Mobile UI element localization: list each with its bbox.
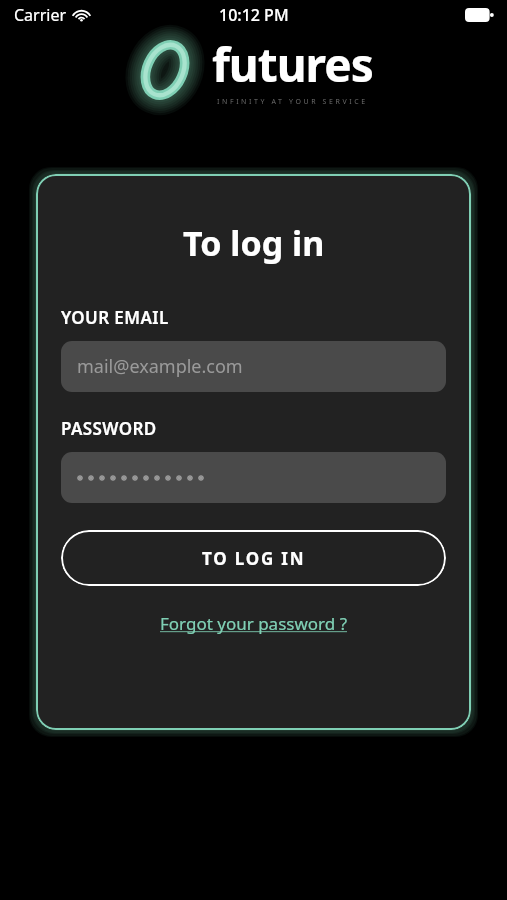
staticText: mail@example.com	[77, 354, 243, 379]
staticText: futures	[212, 33, 373, 96]
staticText: INFINITY AT YOUR SERVICE	[217, 97, 368, 107]
staticText: To log in	[183, 220, 325, 266]
button[interactable]: mail@example.com	[61, 341, 446, 392]
button[interactable]	[61, 452, 446, 503]
staticText: TO LOG IN	[202, 547, 306, 570]
staticText: PASSWORD	[61, 417, 157, 440]
staticText: Carrier	[14, 4, 67, 26]
staticText: YOUR EMAIL	[61, 306, 169, 329]
button[interactable]: Forgot your password ?	[154, 608, 354, 639]
staticText: 10:12 PM	[219, 4, 289, 26]
button[interactable]: TO LOG IN	[61, 530, 446, 586]
staticText: Forgot your password ?	[160, 612, 348, 635]
